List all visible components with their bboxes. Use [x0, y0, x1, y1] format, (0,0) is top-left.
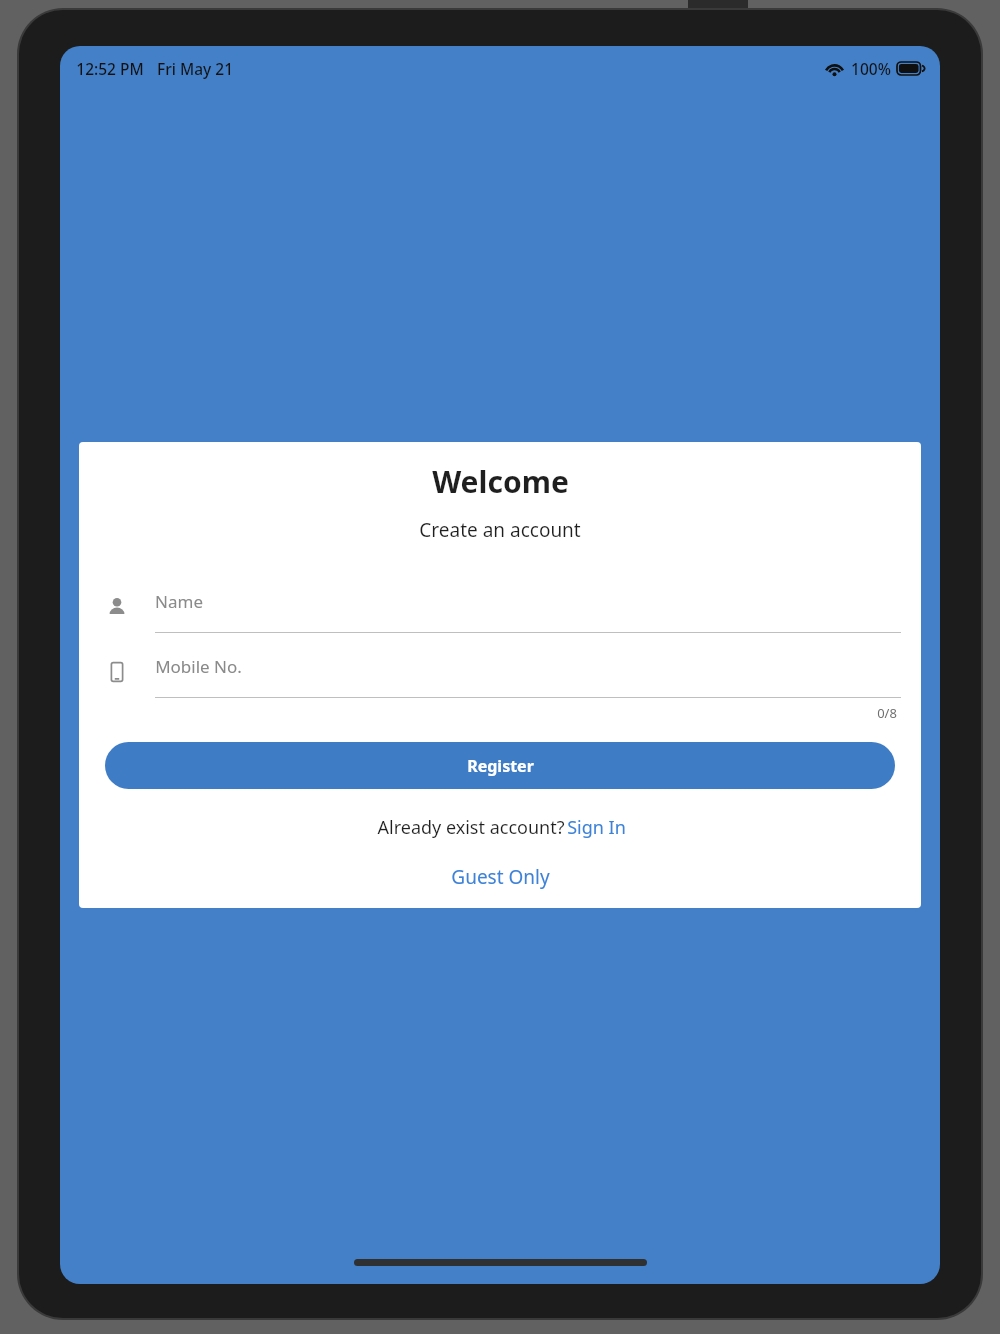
staticText: Sign In — [567, 815, 626, 840]
staticText: 100% — [851, 58, 891, 79]
button[interactable]: Sign In — [567, 815, 626, 840]
button[interactable]: Mobile No. — [105, 655, 901, 698]
staticText: Name — [155, 590, 203, 613]
other: Battery 100% — [897, 62, 924, 75]
staticText: 12:52 PM — [76, 58, 144, 79]
button[interactable]: Guest Only — [443, 862, 558, 892]
staticText: 0/8 — [877, 704, 897, 722]
staticText: Already exist account? — [375, 815, 567, 840]
staticText: Register — [467, 755, 534, 777]
button[interactable]: Register — [105, 742, 895, 789]
staticText: Mobile No. — [155, 655, 242, 678]
staticText: Guest Only — [451, 864, 550, 890]
other: Wi-Fi — [825, 62, 844, 76]
button[interactable]: Name — [105, 590, 901, 633]
staticText: Welcome — [432, 461, 569, 502]
staticText: Create an account — [419, 517, 581, 543]
staticText: Fri May 21 — [157, 58, 233, 79]
